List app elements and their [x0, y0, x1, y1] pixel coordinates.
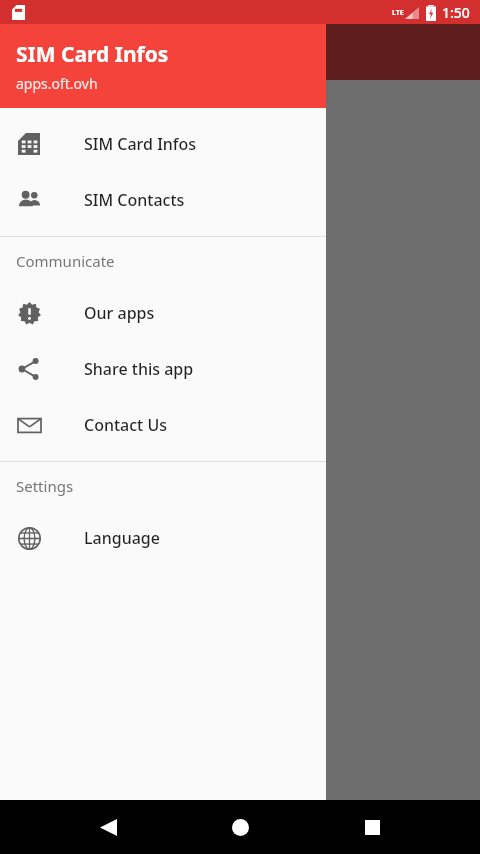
staticText: Contact Us: [84, 414, 167, 436]
staticText: (0): [16, 297, 36, 320]
button[interactable]: Back: [84, 803, 132, 851]
button[interactable]: SIM Card Infos: [0, 116, 326, 172]
staticText: Settings: [16, 476, 74, 496]
staticText: 1:50: [442, 3, 470, 22]
button[interactable]: SIM Contacts: [0, 172, 326, 228]
staticText: SIM Contacts: [84, 189, 185, 211]
button[interactable]: Add: [300, 600, 348, 648]
staticText: Communicate: [16, 251, 115, 271]
button[interactable]: Language: [0, 510, 326, 566]
button[interactable]: Share this app: [0, 341, 326, 397]
staticText: Share this app: [84, 358, 194, 380]
button[interactable]: Recent apps: [348, 803, 396, 851]
staticText: 893101230000510720: [16, 251, 192, 274]
button[interactable]: SIM Card Infos: [0, 24, 326, 108]
staticText: Language: [84, 527, 160, 549]
staticText: Our apps: [84, 302, 155, 324]
staticText: LTE: [392, 8, 404, 18]
button[interactable]: Our apps: [0, 285, 326, 341]
staticText: apps.oft.ovh: [16, 74, 98, 93]
button[interactable]: Contact Us: [0, 397, 326, 453]
button[interactable]: Home: [216, 803, 264, 851]
staticText: SIM Card Infos: [16, 40, 169, 69]
staticText: SIM Card Infos: [84, 133, 197, 155]
